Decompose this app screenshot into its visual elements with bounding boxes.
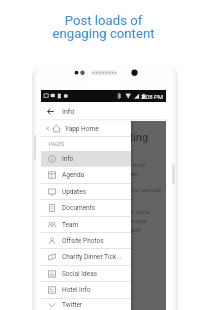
staticText: Twitter <box>62 301 83 309</box>
button[interactable]: Agenda <box>41 167 131 183</box>
staticText: Downstairs there you can load, find maps <box>87 187 162 202</box>
button[interactable]: Charity Dinner Tick... <box>41 249 131 265</box>
staticText: 3:08 PM <box>141 93 164 100</box>
staticText: Info <box>62 155 74 163</box>
staticText: Hotel Info <box>62 286 91 294</box>
staticText: Yapp Home <box>65 125 99 133</box>
staticText: Yapp Meeting <box>81 131 149 144</box>
staticText: Updates <box>62 188 86 196</box>
staticText: Agenda <box>62 171 85 179</box>
button[interactable]: Offsite Photos <box>41 233 131 248</box>
button[interactable]: Documents <box>41 200 131 216</box>
staticText: Offsite Photos <box>62 237 104 245</box>
staticText: Documents <box>62 204 96 212</box>
button[interactable]: Yapp Home <box>41 121 131 136</box>
button[interactable]: Info <box>41 151 131 166</box>
staticText: PAGES <box>49 141 65 147</box>
staticText: Charity Dinner Tick... <box>62 253 122 261</box>
staticText: Team <box>62 221 79 229</box>
button[interactable]: Back <box>44 105 57 118</box>
button[interactable]: Hotel Info <box>41 282 131 298</box>
button[interactable]: Social Ideas <box>41 266 131 281</box>
staticText: Post loads of engaging content <box>52 13 155 42</box>
button[interactable]: Twitter <box>41 299 131 310</box>
button[interactable]: Close navigation drawer <box>41 121 166 310</box>
staticText: Welcome to the Hotel Conference Center <box>93 162 146 177</box>
staticText: Let us know your voice and we will make … <box>93 209 149 233</box>
staticText: Social Ideas <box>62 270 98 278</box>
button[interactable]: Updates <box>41 184 131 199</box>
staticText: Info <box>62 108 75 116</box>
button[interactable]: Team <box>41 217 131 232</box>
